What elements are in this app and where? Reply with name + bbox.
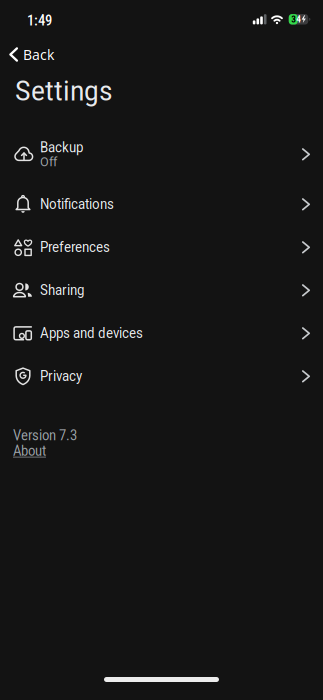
staticText: Off bbox=[40, 155, 57, 169]
staticText: About bbox=[13, 443, 46, 459]
button[interactable]: About bbox=[13, 443, 46, 459]
staticText: Privacy bbox=[40, 368, 82, 384]
button[interactable]: Back bbox=[0, 45, 54, 64]
button[interactable]: Privacy bbox=[0, 355, 323, 398]
staticText: Settings bbox=[15, 74, 113, 107]
staticText: 3 bbox=[291, 14, 296, 25]
button[interactable]: Sharing bbox=[0, 269, 323, 312]
staticText: Back bbox=[23, 45, 54, 64]
staticText: Version 7.3 bbox=[13, 427, 77, 444]
staticText: Sharing bbox=[40, 282, 84, 298]
staticText: Apps and devices bbox=[40, 325, 143, 341]
button[interactable]: Apps and devices bbox=[0, 312, 323, 355]
staticText: Backup bbox=[40, 139, 83, 156]
staticText: Notifications bbox=[40, 196, 114, 212]
staticText: 1:49 bbox=[27, 12, 52, 29]
button[interactable]: Notifications bbox=[0, 183, 323, 226]
button[interactable]: Preferences bbox=[0, 226, 323, 269]
staticText: 4 bbox=[296, 14, 301, 25]
button[interactable]: Backup bbox=[0, 126, 323, 183]
staticText: Preferences bbox=[40, 239, 110, 255]
